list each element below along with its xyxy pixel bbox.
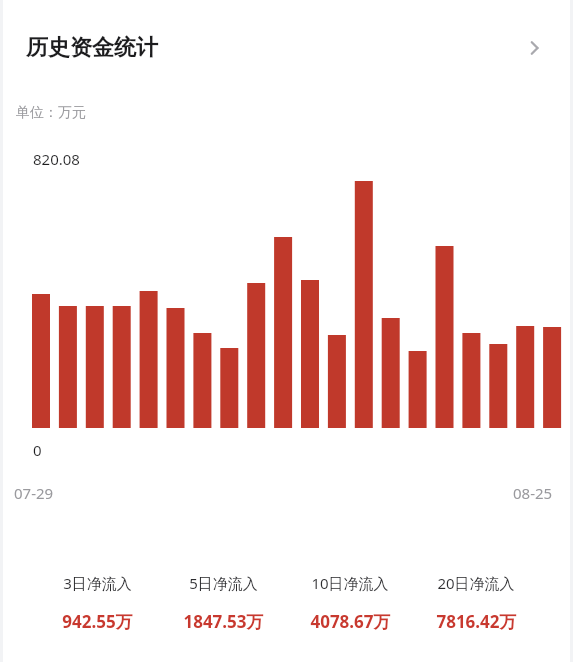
button[interactable]: 3日净流入: [26, 551, 547, 662]
staticText: 3日净流入: [63, 573, 132, 593]
staticText: 7816.42万: [436, 610, 517, 633]
staticText: 820.08: [33, 149, 80, 169]
staticText: 1847.53万: [183, 610, 264, 633]
button[interactable]: 历史资金统计: [0, 0, 573, 96]
staticText: 0: [33, 440, 42, 460]
staticText: 5日净流入: [189, 573, 258, 593]
staticText: 4078.67万: [310, 610, 391, 633]
staticText: 历史资金统计: [26, 34, 158, 62]
other: 查看更多: [517, 31, 551, 65]
staticText: 10日净流入: [311, 573, 389, 593]
staticText: 942.55万: [62, 610, 133, 633]
staticText: 20日净流入: [437, 573, 515, 593]
staticText: 07-29: [14, 483, 54, 503]
staticText: 单位：万元: [16, 104, 86, 122]
staticText: 08-25: [513, 483, 553, 503]
